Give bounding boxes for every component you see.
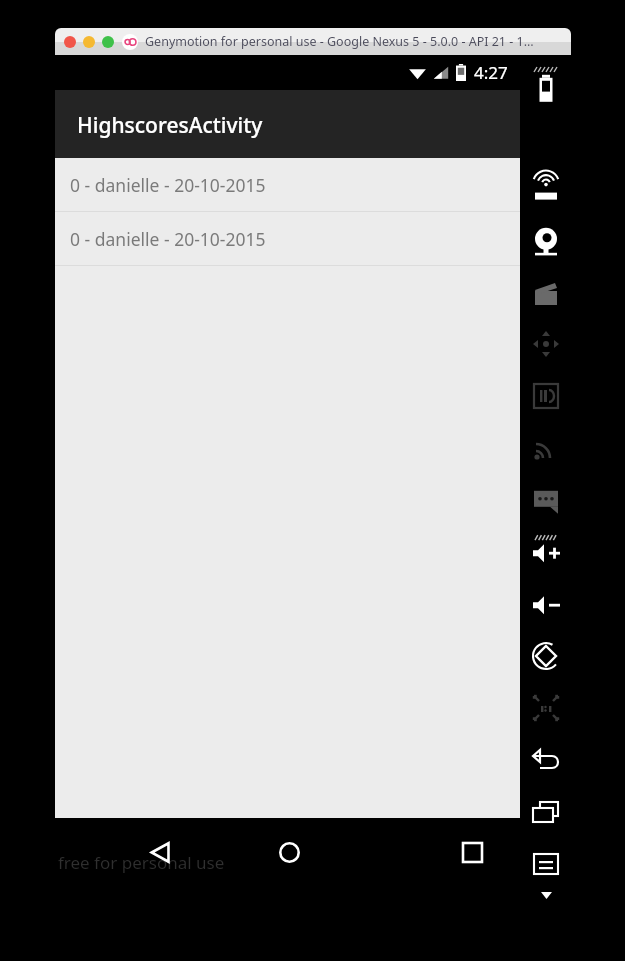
button[interactable]: Control <box>528 167 564 213</box>
staticText: Genymotion for personal use - Google Nex… <box>145 33 534 50</box>
button[interactable]: Control <box>528 739 564 785</box>
button[interactable]: Control <box>528 323 564 369</box>
button[interactable]: Control <box>528 219 564 265</box>
button[interactable]: Control <box>528 479 564 525</box>
button[interactable]: Control <box>528 375 564 421</box>
button[interactable]: HighscoresActivity <box>55 90 520 158</box>
staticText: 0 - danielle - 20-10-2015 <box>70 227 266 251</box>
button[interactable]: Control <box>528 62 564 108</box>
button[interactable]: Control <box>528 583 564 629</box>
button[interactable]: More <box>536 885 556 905</box>
staticText: HighscoresActivity <box>77 111 263 140</box>
button[interactable]: Control <box>528 427 564 473</box>
button[interactable]: Home <box>262 825 316 879</box>
button[interactable]: Recent apps <box>445 825 499 879</box>
button[interactable]: Back <box>133 825 187 879</box>
button[interactable]: Control <box>528 531 564 577</box>
staticText: free for personal use <box>58 851 225 874</box>
staticText: 0 - danielle - 20-10-2015 <box>70 173 266 197</box>
button[interactable]: Control <box>528 791 564 837</box>
button[interactable]: Control <box>528 271 564 317</box>
button[interactable]: 0 - danielle - 20-10-2015 <box>55 212 520 265</box>
button[interactable]: 0 - danielle - 20-10-2015 <box>55 158 520 211</box>
button[interactable]: Control <box>528 687 564 733</box>
button[interactable]: Control <box>528 843 564 889</box>
staticText: 4:27 <box>474 61 508 84</box>
button[interactable]: Control <box>528 635 564 681</box>
